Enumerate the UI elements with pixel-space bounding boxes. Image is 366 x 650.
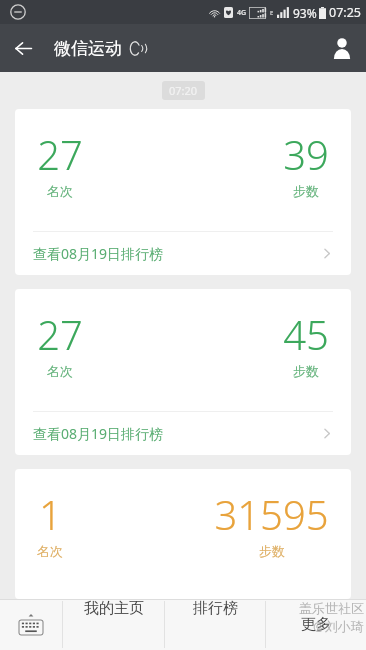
button[interactable]: 更多 (266, 599, 366, 650)
staticText: 27 (37, 307, 83, 361)
staticText: 45 (283, 307, 329, 361)
button[interactable]: 27 (15, 109, 351, 275)
staticText: E (270, 9, 274, 17)
button[interactable]: 27 (15, 289, 351, 455)
button[interactable]: 1 (15, 469, 351, 599)
staticText: 4G (237, 8, 247, 18)
staticText: 93% (293, 5, 317, 21)
staticText: 名次 (47, 183, 73, 199)
staticText: 31595 (214, 487, 329, 541)
staticText: 名次 (37, 543, 63, 559)
staticText: 1 (39, 487, 62, 541)
staticText: @刘小琦 (313, 617, 364, 635)
staticText: 更多 (301, 615, 331, 634)
staticText: 步数 (293, 183, 319, 199)
staticText: 微信运动 (54, 38, 122, 59)
button[interactable]: 排行榜 (165, 599, 265, 618)
staticText: 07:20 (169, 83, 198, 98)
staticText: 排行榜 (193, 599, 238, 618)
button[interactable]: Profile (318, 24, 366, 72)
staticText: 查看08月19日排行榜 (33, 244, 164, 263)
staticText: 查看08月19日排行榜 (33, 424, 164, 443)
button[interactable]: 查看08月19日排行榜 (15, 232, 351, 275)
button[interactable]: Keyboard (0, 599, 62, 650)
staticText: 盖乐世社区 (299, 600, 364, 616)
staticText: 名次 (47, 363, 73, 379)
staticText: 步数 (259, 543, 285, 559)
staticText: 步数 (293, 363, 319, 379)
staticText: 39 (283, 127, 329, 181)
button[interactable]: 我的主页 (63, 599, 164, 618)
button[interactable]: Back (0, 25, 46, 71)
staticText: 07:25 (329, 4, 361, 21)
staticText: 27 (37, 127, 83, 181)
staticText: 我的主页 (84, 599, 144, 618)
button[interactable]: 查看08月19日排行榜 (15, 412, 351, 455)
